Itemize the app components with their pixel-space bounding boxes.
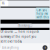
staticText: ↑ [44, 46, 46, 49]
staticText: Ask anything [2, 46, 19, 49]
staticText: Can you help me with this [36, 8, 48, 19]
staticText: Of course — here is a quick [0, 30, 38, 33]
button[interactable]: Send [42, 45, 48, 50]
staticText: sent over today. [0, 40, 22, 43]
staticText: summary of the report you [0, 35, 36, 38]
staticText: Hi [2, 2, 5, 5]
staticText: Thinking… [18, 24, 32, 27]
